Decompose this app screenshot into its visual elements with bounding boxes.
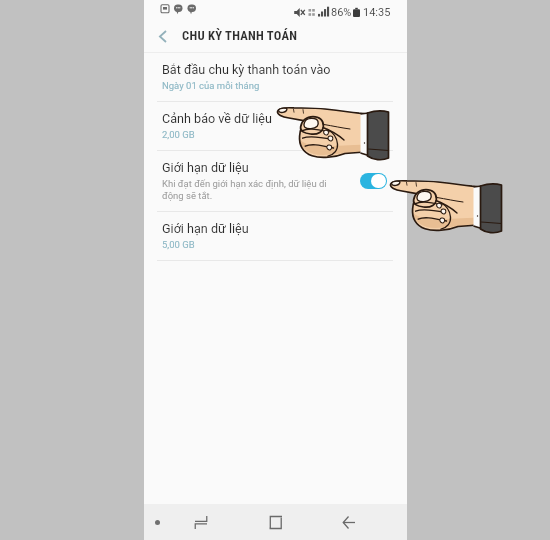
staticText: 86%: [331, 6, 352, 19]
button[interactable]: Recent apps: [262, 504, 288, 540]
button[interactable]: Navigate up: [144, 24, 182, 53]
button[interactable]: Cảnh báo về dữ liệu: [144, 102, 407, 150]
staticText: Ngày 01 của mỗi tháng: [162, 80, 260, 91]
button[interactable]: Giới hạn dữ liệu: [144, 151, 407, 211]
staticText: CHU KỲ THANH TOÁN: [182, 28, 298, 43]
staticText: Bắt đầu chu kỳ thanh toán vào: [162, 62, 331, 77]
staticText: 5,00 GB: [162, 239, 195, 250]
staticText: Khi đạt đến giới hạn xác định, dữ liệu d…: [162, 178, 340, 201]
staticText: Giới hạn dữ liệu: [162, 221, 249, 236]
staticText: 14:35: [363, 6, 391, 19]
button[interactable]: Giới hạn dữ liệu: [144, 212, 407, 260]
button[interactable]: Split screen: [188, 504, 214, 540]
staticText: Cảnh báo về dữ liệu: [162, 111, 272, 126]
button[interactable]: Bắt đầu chu kỳ thanh toán vào: [144, 53, 407, 101]
staticText: Giới hạn dữ liệu: [162, 160, 249, 175]
button[interactable]: Back: [336, 504, 362, 540]
staticText: 2,00 GB: [162, 129, 195, 140]
button[interactable]: Data limit switch: [360, 173, 387, 189]
